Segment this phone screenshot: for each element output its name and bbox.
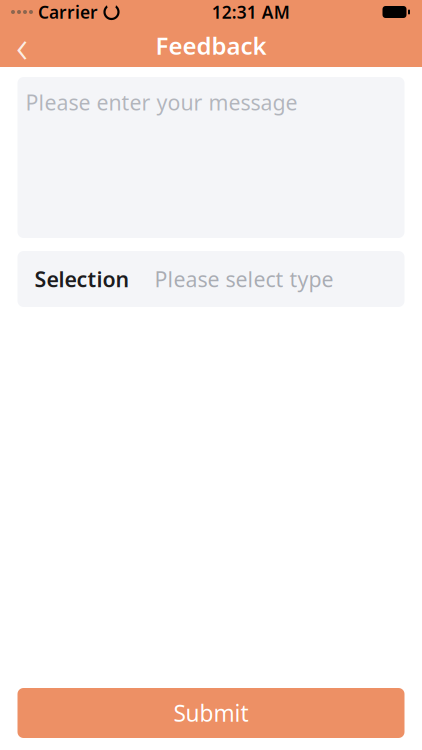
button[interactable]: Back [0, 24, 44, 67]
button[interactable]: Submit [17, 688, 404, 738]
staticText: Carrier [38, 0, 98, 23]
button[interactable]: Please enter your message [17, 77, 404, 238]
staticText: Feedback [155, 30, 266, 61]
staticText: ‹ [16, 15, 28, 76]
staticText: Please select type [154, 265, 333, 293]
button[interactable]: Selection [17, 251, 404, 307]
staticText: Submit [173, 698, 248, 728]
staticText: 12:31 AM [212, 0, 290, 23]
staticText: Please enter your message [25, 88, 297, 116]
staticText: Selection [34, 265, 129, 293]
